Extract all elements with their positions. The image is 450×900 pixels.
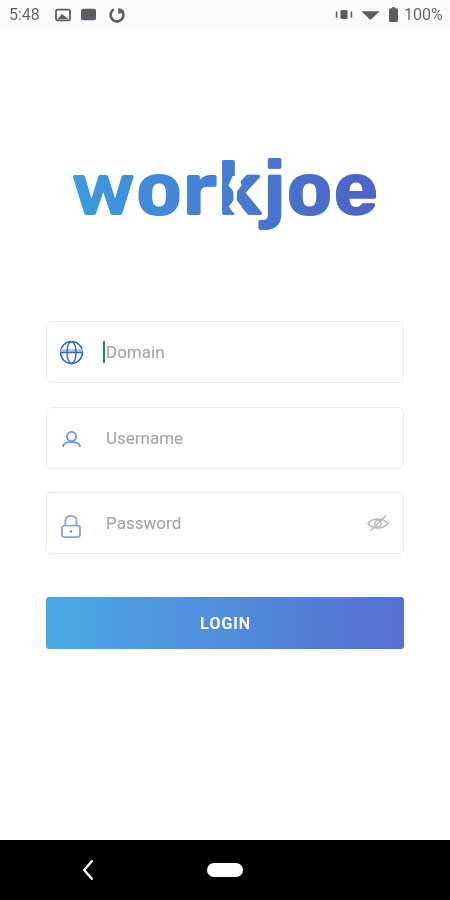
button[interactable]: LOGIN [46,597,404,649]
staticText: Domain [106,342,165,362]
button[interactable]: Password [46,492,404,554]
button[interactable]: Show password [365,510,391,536]
button[interactable]: Username [46,407,404,469]
button[interactable]: Back [72,854,104,886]
staticText: LOGIN [200,614,251,633]
staticText: workjoe [71,143,379,234]
button[interactable]: Domain [46,321,404,383]
staticText: 100% [404,5,443,24]
staticText: Password [106,513,182,533]
staticText: Username [106,428,184,448]
staticText: 5:48 [9,5,40,24]
button[interactable]: Home [207,863,243,877]
